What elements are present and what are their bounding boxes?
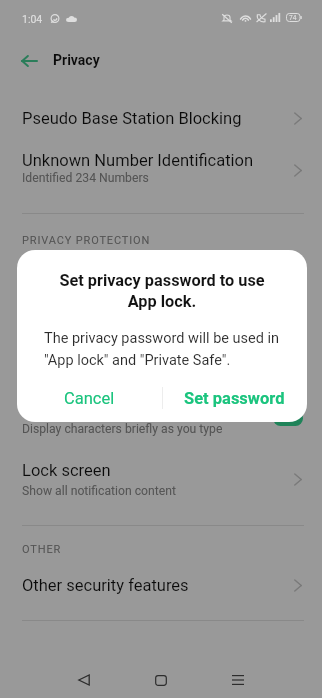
staticText: Privacy: [53, 52, 100, 68]
button[interactable]: Show passwords toggle: [273, 411, 303, 426]
staticText: Other security features: [22, 576, 189, 595]
button[interactable]: Cancel: [17, 383, 162, 413]
staticText: Pseudo Base Station Blocking: [22, 109, 242, 128]
button[interactable]: Back: [14, 46, 43, 75]
button[interactable]: Lock screen: [0, 448, 322, 508]
staticText: OTHER: [22, 543, 62, 556]
button[interactable]: Unknown Number Identification: [0, 139, 322, 197]
button[interactable]: Home: [149, 668, 173, 692]
button[interactable]: Set password: [162, 383, 307, 413]
staticText: Set password: [184, 389, 285, 408]
button[interactable]: Show passwords: [0, 306, 322, 362]
staticText: Show all notification content: [22, 484, 176, 498]
staticText: Display characters briefly as you type: [22, 422, 223, 436]
staticText: App lock: [22, 262, 86, 281]
staticText: Show passwords: [22, 318, 148, 337]
button[interactable]: Pseudo Base Station Blocking: [0, 93, 322, 137]
staticText: Unknown Number Identification: [22, 151, 254, 170]
staticText: 74: [289, 14, 297, 22]
button[interactable]: App lock: [0, 250, 322, 306]
button[interactable]: Back: [72, 668, 96, 692]
staticText: PRIVACY PROTECTION: [22, 234, 151, 247]
button[interactable]: Recent apps: [226, 668, 250, 692]
staticText: Identified 234 Numbers: [22, 171, 149, 185]
button[interactable]: Other security features: [0, 562, 322, 608]
staticText: Cancel: [64, 389, 115, 408]
staticText: Lock screen: [22, 461, 111, 480]
staticText: Protect apps with password: [22, 282, 174, 296]
staticText: Set privacy password to use App lock.: [17, 271, 307, 311]
staticText: The privacy password will be used in "Ap…: [44, 330, 280, 368]
staticText: 1:04: [22, 13, 43, 25]
